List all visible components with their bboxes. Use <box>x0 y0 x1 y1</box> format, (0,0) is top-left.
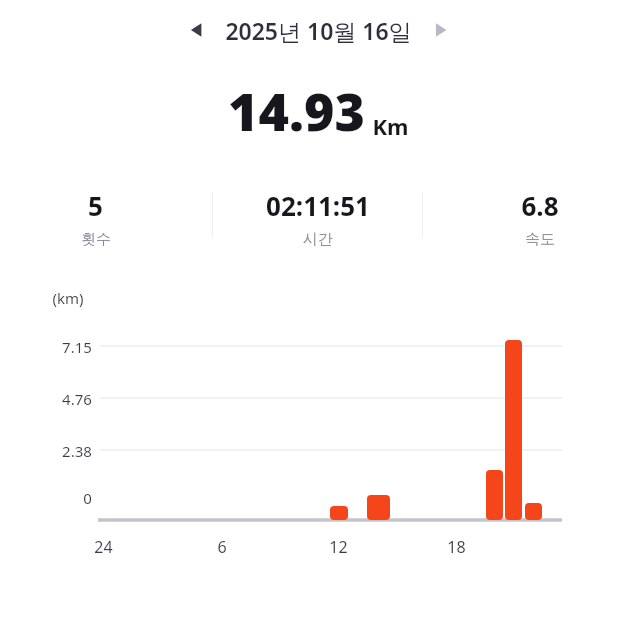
staticText: 24 <box>94 536 113 558</box>
staticText: 2.38 <box>62 441 92 461</box>
staticText: 12 <box>329 536 348 558</box>
staticText: 횟수 <box>81 230 111 249</box>
staticText: 2025년 10월 16일 <box>225 15 412 46</box>
staticText: 6 <box>217 536 227 558</box>
button[interactable]: Next day <box>421 10 461 50</box>
staticText: 7.15 <box>62 337 92 357</box>
button[interactable]: 02:11:51 <box>191 188 444 249</box>
staticText: 6.8 <box>521 188 559 223</box>
staticText: 시간 <box>303 230 333 249</box>
staticText: 속도 <box>525 230 555 249</box>
staticText: 0 <box>83 488 92 508</box>
staticText: 02:11:51 <box>266 188 370 223</box>
staticText: 14.93 <box>228 75 365 146</box>
button[interactable]: 5 <box>0 188 191 249</box>
button[interactable]: Previous day <box>176 10 216 50</box>
staticText: Km <box>372 111 409 141</box>
staticText: 18 <box>447 536 466 558</box>
staticText: (km) <box>52 288 84 308</box>
staticText: 4.76 <box>62 389 92 409</box>
staticText: 5 <box>88 188 103 223</box>
button[interactable]: 6.8 <box>444 188 636 249</box>
